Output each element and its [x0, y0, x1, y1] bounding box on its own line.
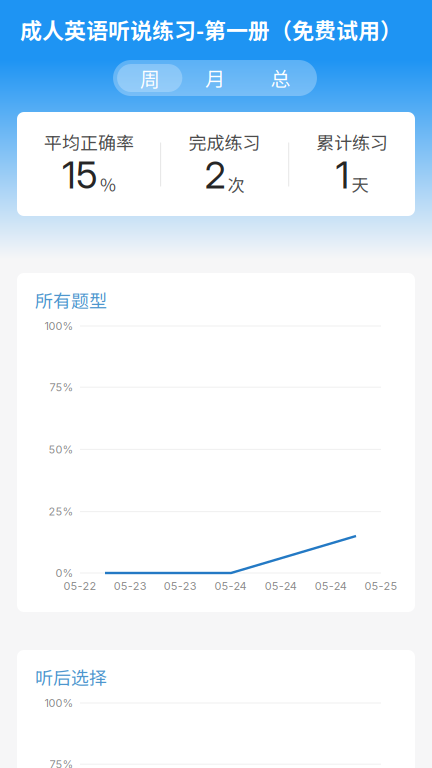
staticText: 100% [44, 696, 73, 710]
staticText: 05-24 [214, 579, 246, 593]
staticText: 75% [49, 381, 73, 394]
staticText: 0% [55, 566, 73, 580]
staticText: 平均正确率 [44, 129, 134, 155]
staticText: 完成练习 [188, 129, 260, 155]
staticText: 05-23 [164, 579, 197, 593]
button[interactable]: 总 [248, 64, 313, 92]
staticText: 周 [140, 63, 160, 92]
staticText: 所有题型 [35, 287, 107, 313]
staticText: 2 [204, 152, 225, 198]
staticText: 05-24 [265, 579, 297, 593]
staticText: 天 [351, 171, 368, 197]
staticText: 05-25 [364, 579, 397, 593]
staticText: 05-24 [315, 579, 347, 593]
staticText: 05-22 [63, 579, 96, 593]
button[interactable]: 月 [182, 64, 248, 92]
staticText: 累计练习 [316, 129, 388, 155]
staticText: 月 [205, 63, 225, 92]
staticText: 总 [270, 63, 290, 92]
staticText: % [100, 171, 116, 197]
staticText: 1 [335, 152, 349, 198]
staticText: 成人英语听说练习-第一册（免费试用） [20, 14, 402, 45]
staticText: 听后选择 [35, 664, 107, 690]
staticText: 15 [62, 152, 98, 198]
staticText: 25% [48, 505, 73, 518]
staticText: 05-23 [114, 579, 147, 593]
staticText: 次 [227, 171, 244, 197]
staticText: 50% [48, 443, 73, 456]
button[interactable]: 周 [117, 64, 182, 92]
staticText: 100% [44, 319, 73, 333]
staticText: 75% [49, 758, 73, 768]
